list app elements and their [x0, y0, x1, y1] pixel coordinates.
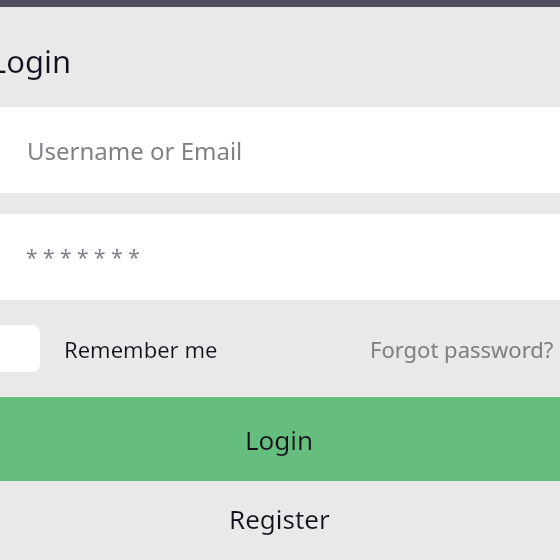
staticText: Login — [0, 40, 72, 82]
button[interactable]: Forgot password? — [370, 334, 560, 364]
staticText: Register — [229, 501, 330, 536]
button[interactable]: Username or Email — [0, 107, 560, 193]
button[interactable]: Login — [0, 397, 560, 481]
button[interactable]: Remember me — [64, 334, 218, 364]
button[interactable]: Register — [0, 481, 560, 560]
staticText: * * * * * * * — [26, 243, 140, 272]
staticText: Login — [245, 422, 314, 457]
staticText: Username or Email — [27, 134, 243, 167]
button[interactable]: * * * * * * * — [0, 214, 560, 300]
